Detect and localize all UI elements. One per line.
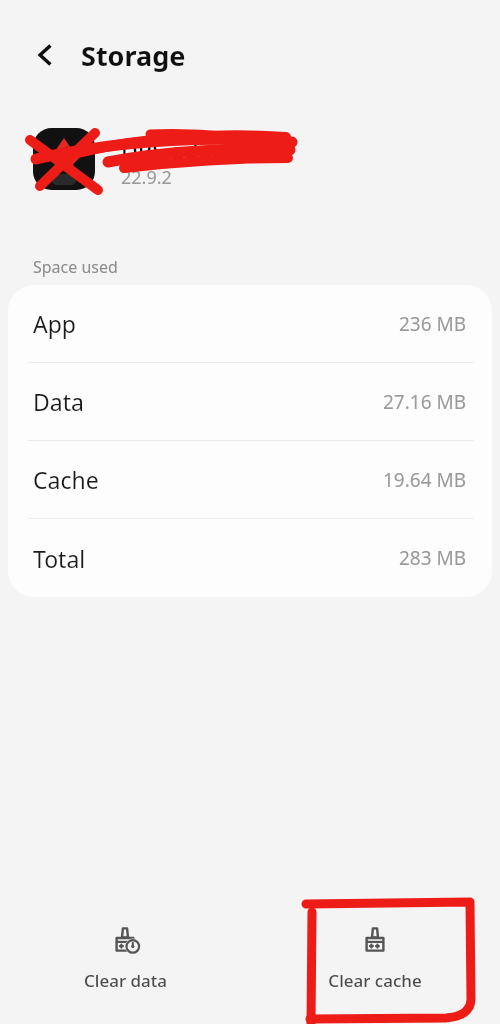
button[interactable]: Data — [8, 363, 492, 441]
staticText: App — [33, 308, 76, 339]
staticText: 27.16 MB — [383, 389, 467, 415]
staticText: 19.64 MB — [383, 467, 467, 493]
button[interactable]: Total — [8, 519, 492, 597]
staticText: Clear data — [84, 969, 167, 992]
button[interactable]: Clear data — [0, 894, 250, 1024]
staticText: 283 MB — [399, 545, 467, 571]
button[interactable]: App — [8, 285, 492, 363]
staticText: 236 MB — [399, 311, 467, 337]
staticText: 22.9.2 — [121, 165, 172, 190]
staticText: Data — [33, 386, 84, 417]
button[interactable]: Clear cache — [250, 894, 500, 1024]
button[interactable]: Cache — [8, 441, 492, 519]
staticText: Total — [33, 543, 86, 574]
staticText: Clear cache — [328, 969, 422, 992]
staticText: Space used — [33, 256, 118, 278]
staticText: Cache — [33, 464, 99, 495]
staticText: Storage — [81, 37, 186, 74]
staticText: DRS adjust-link — [121, 135, 287, 166]
button[interactable]: Back — [22, 32, 68, 78]
